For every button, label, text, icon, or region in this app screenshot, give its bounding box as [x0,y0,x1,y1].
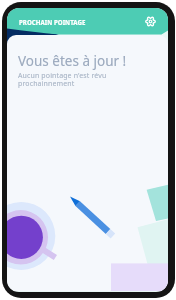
button[interactable]: Settings [142,13,158,29]
staticText: Vous êtes à jour ! [18,52,127,70]
staticText: Aucun pointage n'est révu prochainnement [18,71,107,88]
staticText: PROCHAIN POINTAGE [19,18,86,26]
